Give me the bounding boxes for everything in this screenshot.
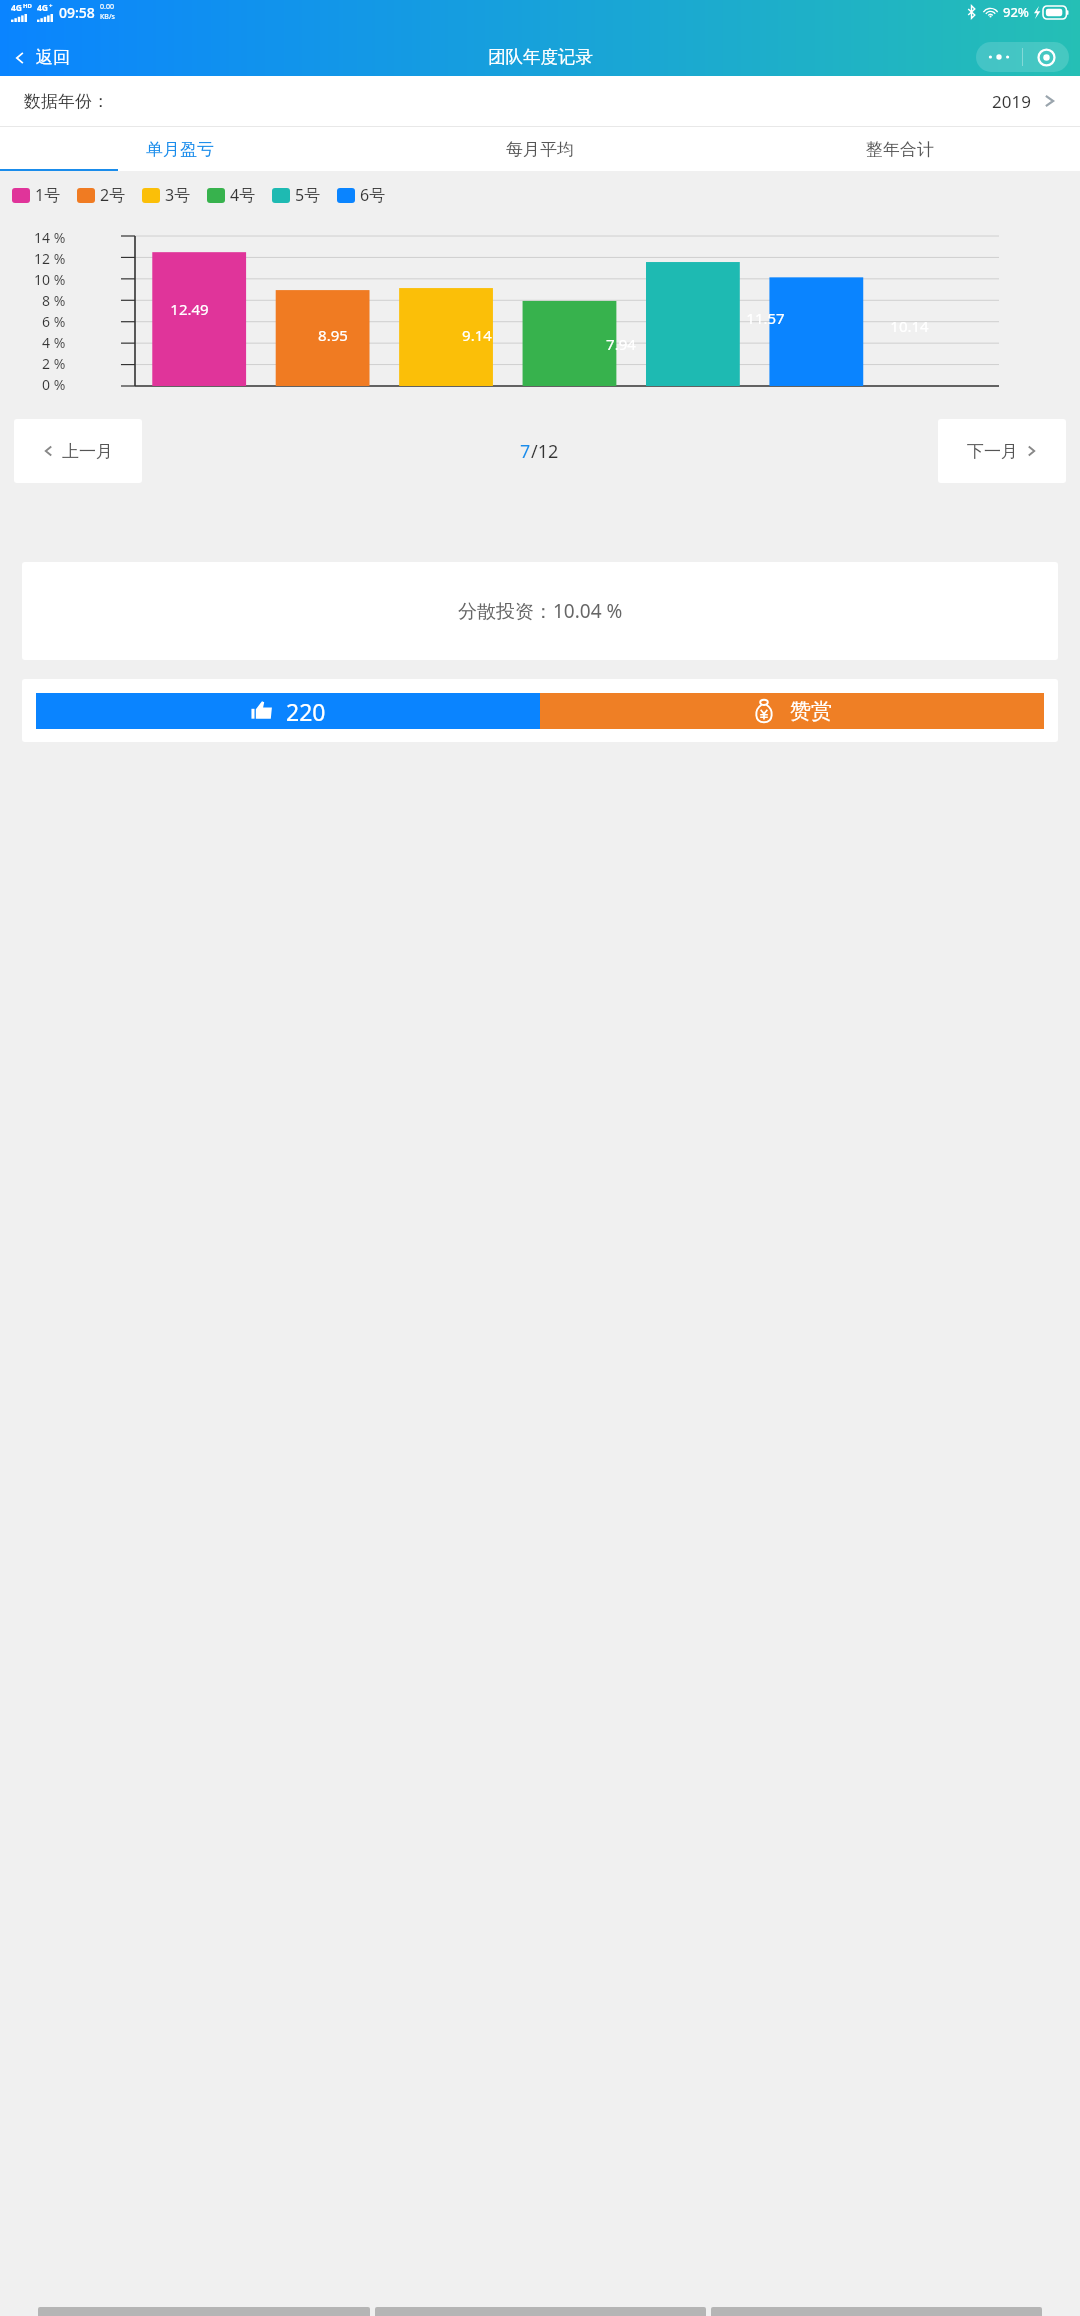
staticText: 2019 [992,90,1031,113]
staticText: 1号 [35,184,61,206]
staticText: 4G [11,2,23,14]
staticText: 6号 [360,184,386,206]
staticText: 3号 [165,184,191,206]
staticText: 2号 [100,184,126,206]
staticText: 分散投资：10.04 % [458,598,623,624]
button[interactable]: 赞赏 [540,693,1044,729]
staticText: 12 % [34,249,66,268]
staticText: 数据年份： [24,91,109,112]
staticText: 下一月 [967,441,1018,462]
staticText: 赞赏 [790,698,832,724]
staticText: 0 % [42,375,66,394]
button[interactable]: 数据年份： [0,76,1080,126]
button[interactable]: 单月盈亏 [0,127,360,171]
button[interactable]: 分散投资：10.04 % [22,562,1058,660]
staticText: 团队年度记录 [488,46,593,68]
staticText: 12.49 [170,299,209,319]
staticText: 14 % [34,228,66,247]
staticText: + [49,2,53,10]
button[interactable]: 上一月 [14,419,142,483]
staticText: /12 [531,439,559,464]
staticText: 4 % [42,333,66,352]
staticText: 7 [520,439,531,464]
staticText: HD [23,2,32,10]
staticText: 11.57 [746,308,785,328]
staticText: 10.14 [890,316,929,336]
staticText: 返回 [36,47,70,68]
staticText: KB/s [100,12,115,22]
staticText: 8.95 [318,325,348,345]
staticText: 0.00 [100,2,114,12]
staticText: 4号 [230,184,256,206]
staticText: 92% [1003,3,1029,21]
staticText: 6 % [42,312,66,331]
button[interactable]: 下一月 [938,419,1066,483]
staticText: 上一月 [62,441,113,462]
staticText: 2 % [42,354,66,373]
staticText: 单月盈亏 [146,139,214,160]
button[interactable]: 返回 [6,43,76,72]
staticText: 8 % [42,291,66,310]
staticText: 4G [37,2,49,14]
button[interactable]: 220 [36,693,540,729]
button[interactable]: 整年合计 [720,127,1080,171]
staticText: 整年合计 [866,139,934,160]
staticText: 每月平均 [506,139,574,160]
staticText: 7.94 [606,334,636,354]
staticText: 220 [286,696,326,727]
staticText: 10 % [34,270,66,289]
staticText: 9.14 [462,325,492,345]
button[interactable]: More options and close mini program [976,42,1069,72]
staticText: 09:58 [59,3,95,22]
staticText: 5号 [295,184,321,206]
button[interactable]: 每月平均 [360,127,720,171]
